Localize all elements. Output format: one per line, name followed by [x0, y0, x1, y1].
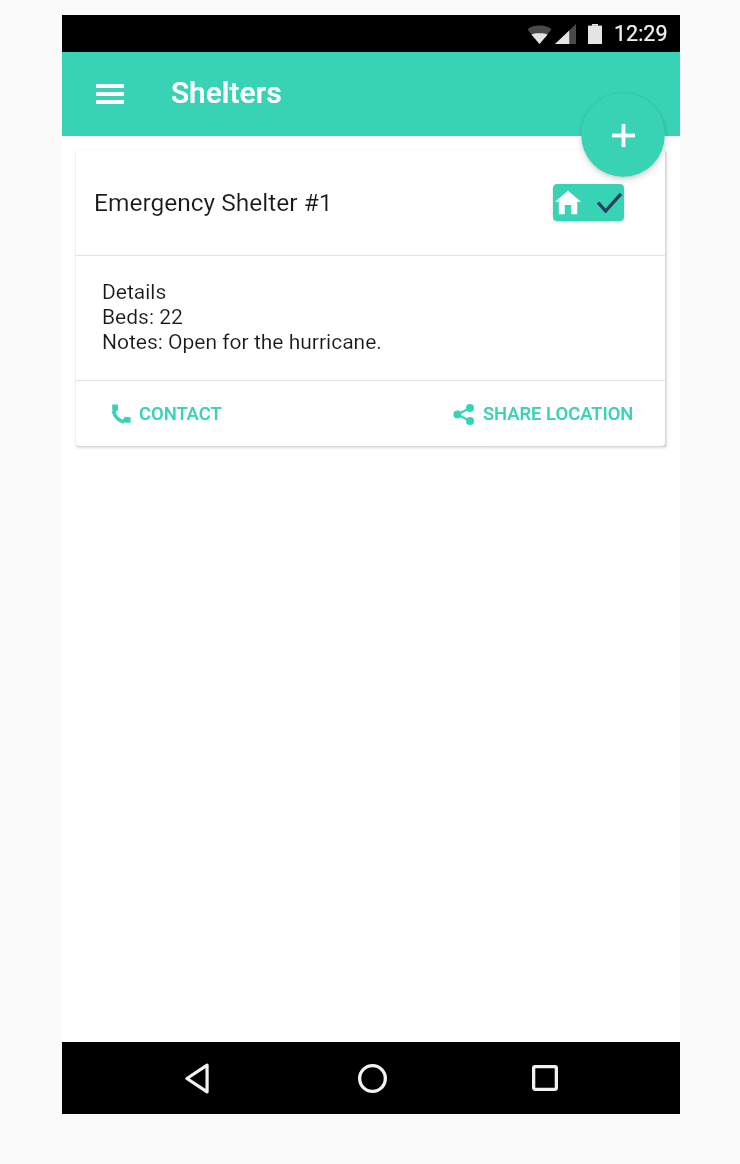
staticText: 12:29	[614, 21, 668, 46]
staticText: Emergency Shelter #1	[94, 188, 333, 217]
button[interactable]: Add shelter	[581, 93, 665, 177]
staticText: Beds: 22	[102, 305, 183, 330]
button[interactable]: Open navigation menu	[86, 70, 134, 118]
staticText: Notes: Open for the hurricane.	[102, 330, 382, 355]
button[interactable]: Recent apps	[517, 1050, 573, 1106]
staticText: Shelters	[171, 75, 282, 110]
button[interactable]: Shelter open and verified	[553, 184, 624, 221]
button[interactable]: Home	[344, 1050, 400, 1106]
staticText: CONTACT	[139, 403, 222, 425]
staticText: SHARE LOCATION	[483, 403, 634, 425]
staticText: Details	[102, 280, 167, 305]
button[interactable]: CONTACT	[103, 395, 230, 433]
button[interactable]: Back	[169, 1050, 225, 1106]
button[interactable]: SHARE LOCATION	[446, 395, 642, 433]
